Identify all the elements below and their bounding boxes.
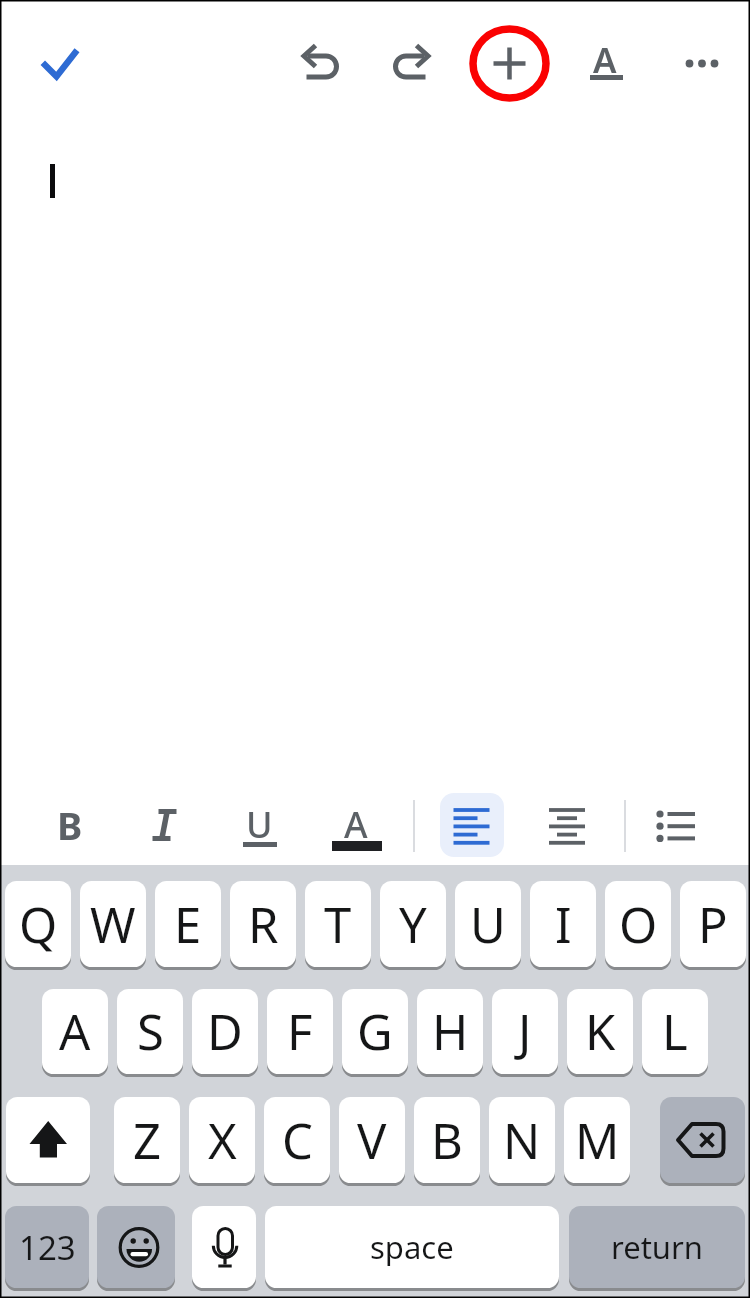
staticText: M [575,1107,620,1174]
button[interactable]: O [605,881,671,967]
button[interactable]: B [48,799,92,849]
button[interactable] [641,793,705,857]
button[interactable] [192,1206,256,1288]
button[interactable]: R [230,881,296,967]
button[interactable] [22,26,98,102]
staticText: B [57,799,83,849]
button[interactable]: F [267,989,333,1074]
button[interactable]: G [342,989,408,1074]
staticText: U [246,800,273,849]
staticText: V [357,1107,387,1174]
button[interactable] [143,799,187,849]
button[interactable]: I [530,881,596,967]
button[interactable]: T [305,881,371,967]
button[interactable] [97,1206,175,1288]
button[interactable] [660,1097,745,1183]
staticText: T [324,891,352,958]
staticText: N [503,1107,541,1174]
button[interactable]: Z [114,1097,180,1183]
button[interactable]: N [489,1097,555,1183]
staticText: R [248,891,279,958]
button[interactable]: J [492,989,558,1074]
staticText: C [282,1107,313,1174]
staticText: space [370,1226,454,1268]
staticText: X [208,1107,237,1174]
button[interactable]: D [192,989,258,1074]
button[interactable]: K [567,989,633,1074]
button[interactable]: space [265,1206,559,1288]
staticText: I [555,891,572,958]
button[interactable]: A [334,799,378,849]
staticText: B [431,1107,463,1174]
button[interactable]: U [455,881,521,967]
button[interactable]: A [569,24,641,96]
staticText: L [662,998,688,1065]
button[interactable]: V [339,1097,405,1183]
staticText: A [593,36,617,84]
button[interactable]: return [569,1206,745,1288]
staticText: return [611,1226,703,1268]
button[interactable]: X [189,1097,255,1183]
staticText: A [59,998,91,1065]
staticText: H [432,998,469,1065]
button[interactable] [282,27,356,101]
staticText: Q [19,891,58,958]
button[interactable]: M [564,1097,630,1183]
button[interactable]: Y [380,881,446,967]
button[interactable]: S [117,989,183,1074]
staticText: A [344,800,368,849]
button[interactable]: B [414,1097,480,1183]
button[interactable]: A [42,989,108,1074]
staticText: F [287,998,313,1065]
staticText: E [174,891,202,958]
button[interactable] [467,21,553,107]
button[interactable]: Q [5,881,71,967]
staticText: K [585,998,616,1065]
button[interactable]: E [155,881,221,967]
button[interactable] [379,27,453,101]
button[interactable]: 123 [5,1206,89,1288]
staticText: 123 [19,1225,76,1270]
button[interactable] [662,26,738,102]
staticText: Z [133,1107,162,1174]
staticText: W [90,891,136,958]
button[interactable]: W [80,881,146,967]
staticText: O [619,891,658,958]
staticText: J [518,998,532,1065]
staticText: G [357,998,393,1065]
button[interactable] [440,793,504,857]
staticText: S [137,998,164,1065]
staticText: U [470,891,506,958]
staticText: D [207,998,243,1065]
button[interactable] [535,793,599,857]
button[interactable]: L [642,989,708,1074]
staticText: Y [399,891,427,958]
button[interactable] [6,1097,90,1183]
button[interactable]: H [417,989,483,1074]
staticText: P [698,891,728,958]
button[interactable]: P [680,881,746,967]
button[interactable]: C [264,1097,330,1183]
button[interactable]: U [237,799,281,849]
